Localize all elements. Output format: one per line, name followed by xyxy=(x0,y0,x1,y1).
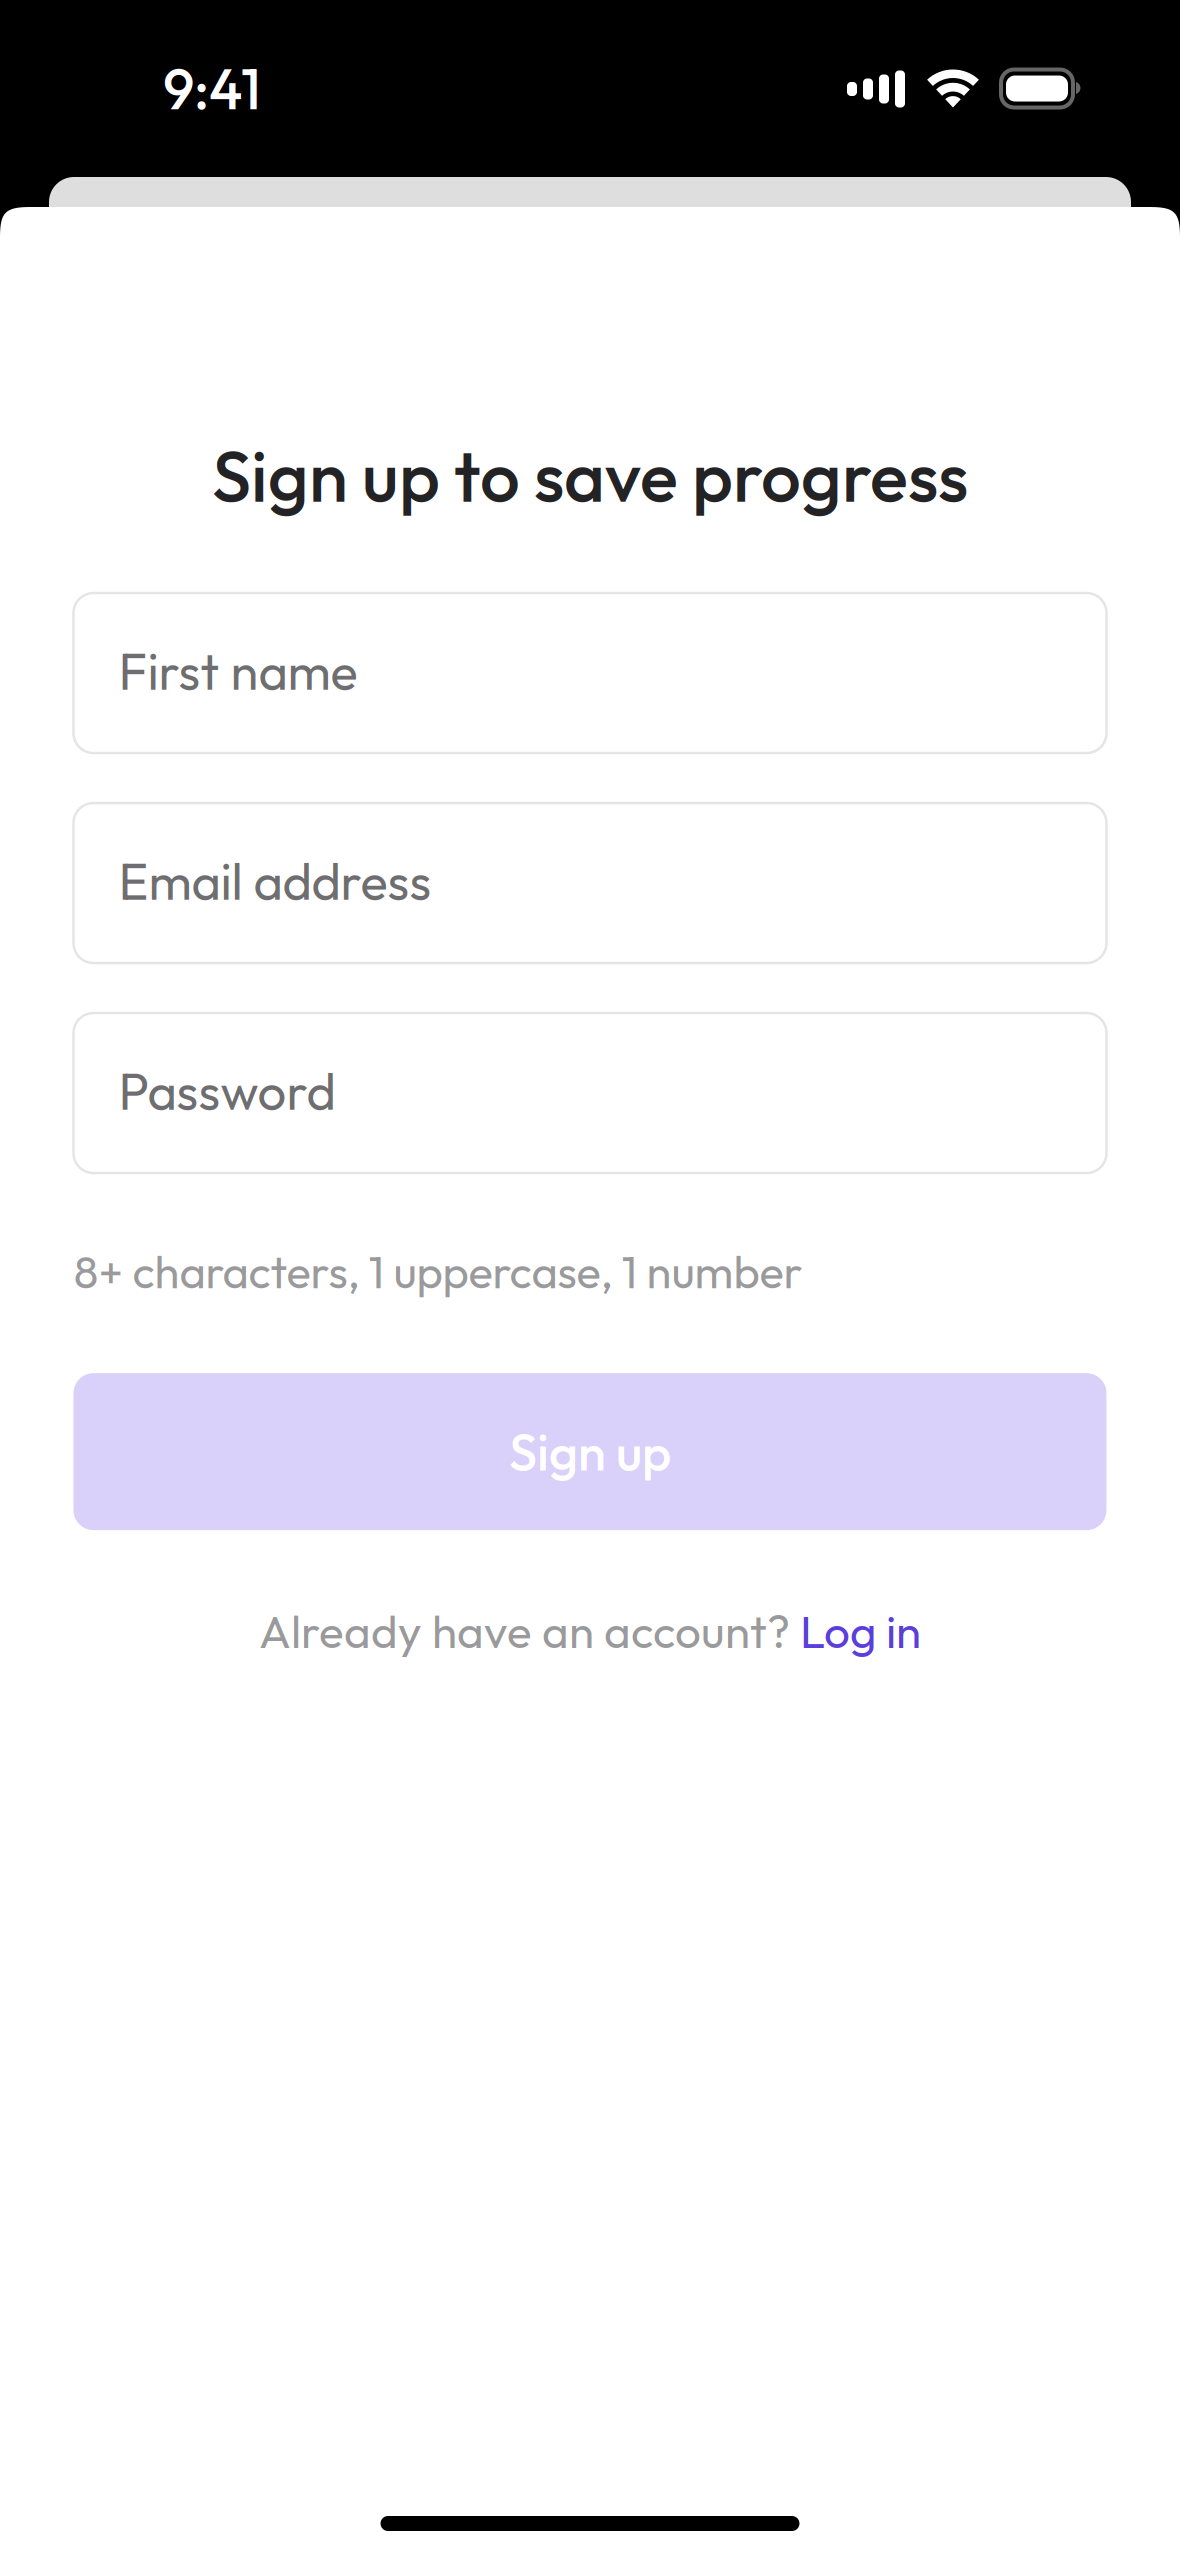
button[interactable]: Email address xyxy=(73,803,1106,963)
staticText: Already have an account? xyxy=(259,1602,800,1660)
button[interactable]: Sign up xyxy=(73,1373,1106,1530)
staticText: 8+ characters, 1 uppercase, 1 number xyxy=(73,1243,802,1300)
staticText: Log in xyxy=(800,1602,921,1660)
staticText: Sign up to save progress xyxy=(212,431,968,520)
button[interactable]: First name xyxy=(73,593,1106,753)
staticText: Password xyxy=(118,1059,335,1123)
staticText: First name xyxy=(118,639,357,703)
button[interactable]: Password xyxy=(73,1013,1106,1173)
staticText: Email address xyxy=(118,849,431,913)
staticText: Sign up xyxy=(509,1420,671,1483)
button[interactable]: Log in xyxy=(800,1602,921,1660)
staticText: 9:41 xyxy=(163,53,261,124)
